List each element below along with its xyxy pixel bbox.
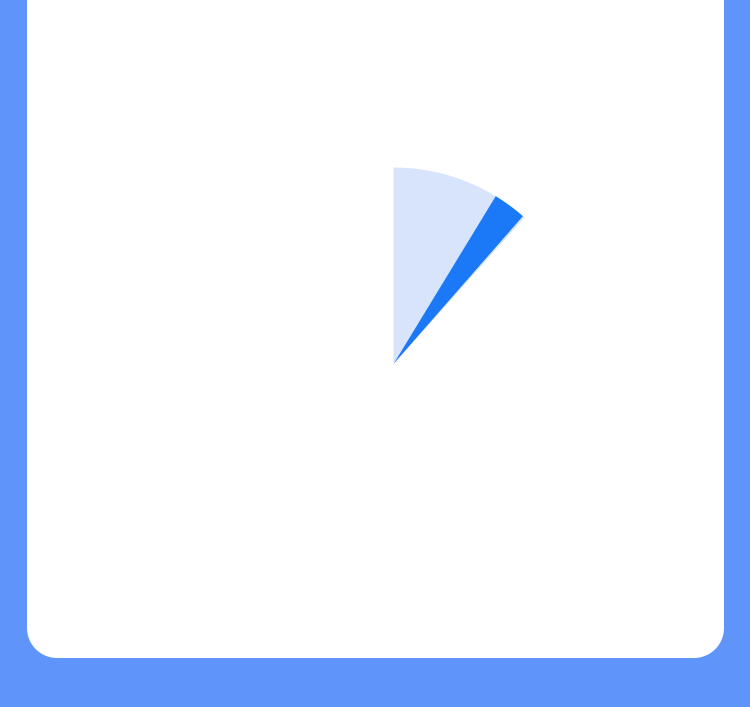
button[interactable]: Pie chart bbox=[197, 167, 590, 560]
